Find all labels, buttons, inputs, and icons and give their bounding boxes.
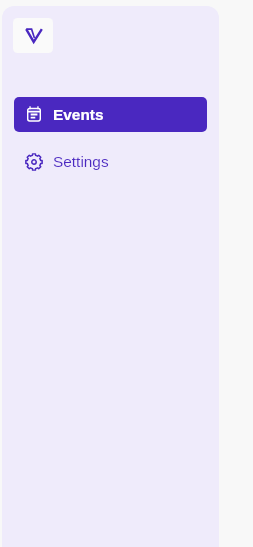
button[interactable]: Events (14, 97, 207, 132)
staticText: Settings (53, 153, 109, 170)
other: Logo (13, 18, 53, 53)
staticText: Events (53, 106, 104, 123)
button[interactable]: Settings (14, 144, 207, 179)
